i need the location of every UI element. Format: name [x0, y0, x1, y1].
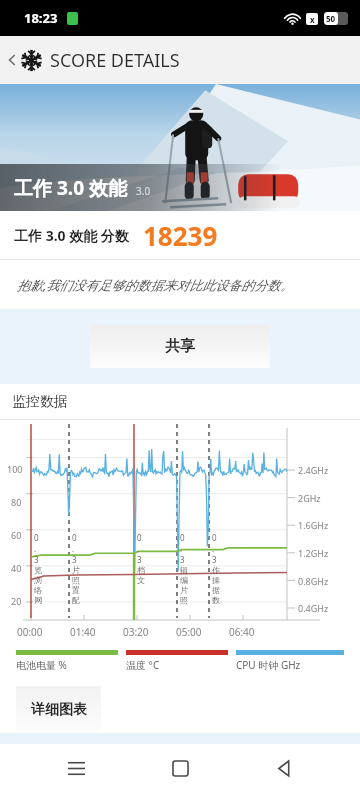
- staticText: 2.4GHz: [298, 464, 329, 476]
- staticText: 0: [180, 532, 185, 543]
- staticText: 0: [72, 532, 77, 543]
- staticText: 3: [137, 554, 142, 565]
- staticText: 3.0: [136, 184, 151, 198]
- button[interactable]: SCORE DETAILS: [0, 36, 360, 84]
- staticText: 据: [212, 585, 220, 595]
- staticText: .: [180, 543, 183, 554]
- staticText: 03:20: [123, 625, 149, 639]
- staticText: 2GHz: [298, 492, 321, 504]
- staticText: 06:40: [229, 625, 255, 639]
- staticText: .: [137, 543, 140, 554]
- staticText: 档: [137, 565, 145, 575]
- staticText: 温度 °C: [126, 658, 160, 672]
- staticText: 01:40: [70, 625, 96, 639]
- staticText: 1.2GHz: [298, 547, 329, 559]
- staticText: 18:23: [24, 9, 58, 27]
- staticText: 操: [212, 575, 220, 585]
- button[interactable]: Back: [256, 744, 312, 792]
- staticText: 20: [11, 595, 22, 607]
- staticText: SCORE DETAILS: [50, 48, 180, 73]
- staticText: 0: [34, 532, 39, 543]
- staticText: CPU 时钟 GHz: [236, 658, 301, 672]
- staticText: 文: [137, 575, 145, 585]
- staticText: 3: [34, 554, 39, 565]
- staticText: .: [34, 543, 37, 554]
- staticText: 40: [11, 562, 22, 574]
- staticText: 抱歉,我们没有足够的数据来对比此设备的分数。: [17, 276, 294, 294]
- staticText: 80: [11, 496, 22, 508]
- button[interactable]: 详细图表: [16, 686, 101, 733]
- staticText: 电池电量 %: [16, 658, 67, 672]
- staticText: 片: [180, 585, 188, 595]
- staticText: 3: [180, 554, 185, 565]
- staticText: .: [72, 543, 75, 554]
- staticText: 详细图表: [31, 701, 87, 719]
- staticText: 照: [180, 595, 188, 605]
- staticText: x: [310, 14, 315, 25]
- staticText: 0.4GHz: [298, 602, 329, 614]
- staticText: 照: [72, 575, 80, 585]
- staticText: 工作 3.0 效能 分数: [14, 226, 129, 245]
- staticText: 0.8GHz: [298, 575, 329, 587]
- staticText: 监控数据: [12, 393, 68, 411]
- button[interactable]: Home: [152, 744, 208, 792]
- button[interactable]: 共享: [90, 325, 270, 368]
- staticText: 作: [212, 565, 220, 575]
- staticText: 览: [34, 565, 42, 575]
- staticText: 0: [212, 532, 217, 543]
- staticText: 配: [72, 595, 80, 605]
- staticText: 数: [212, 595, 220, 605]
- staticText: 网: [34, 595, 42, 605]
- staticText: 60: [11, 529, 22, 541]
- staticText: 络: [34, 585, 42, 595]
- staticText: 3: [72, 554, 77, 565]
- staticText: 辑: [180, 565, 188, 575]
- staticText: 18239: [143, 218, 218, 253]
- staticText: 3: [212, 554, 217, 565]
- staticText: 1.6GHz: [298, 519, 329, 531]
- staticText: 共享: [165, 337, 195, 356]
- button[interactable]: Recent apps: [48, 744, 104, 792]
- staticText: 50: [326, 13, 336, 24]
- staticText: 05:00: [176, 625, 202, 639]
- staticText: 100: [7, 463, 23, 475]
- staticText: 工作 3.0 效能: [14, 175, 127, 201]
- staticText: 编: [180, 575, 188, 585]
- staticText: 00:00: [17, 625, 43, 639]
- staticText: 片: [72, 565, 80, 575]
- staticText: .: [212, 543, 215, 554]
- staticText: 置: [72, 585, 80, 595]
- staticText: 浏: [34, 575, 42, 585]
- staticText: 0: [137, 532, 142, 543]
